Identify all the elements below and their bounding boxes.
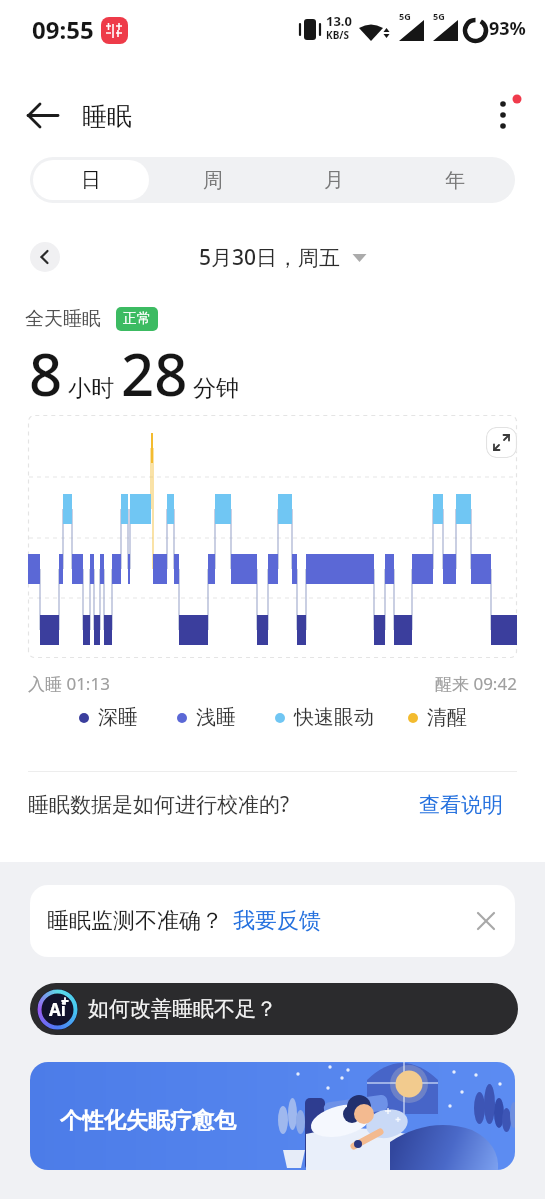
button[interactable]: 个性化失眠疗愈包 bbox=[30, 1062, 515, 1170]
staticText: 如何改善睡眠不足？ bbox=[88, 996, 277, 1022]
staticText: 28 bbox=[121, 334, 188, 413]
button[interactable]: 5月30日，周五 bbox=[199, 243, 367, 272]
button[interactable]: 周 bbox=[155, 160, 270, 200]
staticText: 周 bbox=[203, 168, 223, 193]
staticText: 清醒 bbox=[427, 705, 467, 730]
button[interactable]: 睡眠数据是如何进行校准的? bbox=[28, 790, 503, 819]
staticText: 8 bbox=[29, 334, 63, 413]
staticText: 93% bbox=[489, 16, 526, 41]
button[interactable] bbox=[486, 427, 517, 458]
staticText: 09:55 bbox=[32, 13, 94, 46]
staticText: KB/S bbox=[326, 28, 349, 42]
staticText: 5G bbox=[399, 10, 411, 22]
staticText: 年 bbox=[445, 168, 465, 193]
staticText: 查看说明 bbox=[419, 792, 503, 818]
staticText: 快速眼动 bbox=[294, 705, 374, 730]
staticText: 我要反馈 bbox=[233, 907, 321, 935]
staticText: 醒来 09:42 bbox=[435, 672, 517, 695]
button[interactable] bbox=[475, 910, 497, 932]
staticText: 睡眠监测不准确？ bbox=[47, 907, 223, 935]
button[interactable]: 月 bbox=[276, 160, 391, 200]
staticText: 睡眠 bbox=[82, 101, 132, 132]
button[interactable] bbox=[25, 100, 61, 132]
staticText: 小时 bbox=[68, 374, 114, 403]
staticText: 日 bbox=[81, 168, 101, 193]
staticText: 13.0 bbox=[326, 12, 352, 30]
button[interactable] bbox=[490, 92, 526, 136]
staticText: 全天睡眠 bbox=[25, 307, 101, 331]
staticText: 正常 bbox=[123, 310, 151, 328]
button[interactable]: 年 bbox=[397, 160, 512, 200]
staticText: 入睡 01:13 bbox=[28, 672, 110, 695]
staticText: 月 bbox=[324, 168, 344, 193]
staticText: 深睡 bbox=[98, 705, 138, 730]
staticText: 个性化失眠疗愈包 bbox=[60, 1107, 236, 1135]
button[interactable] bbox=[30, 242, 60, 272]
staticText: 5G bbox=[433, 10, 445, 22]
staticText: 分钟 bbox=[193, 374, 239, 403]
button[interactable]: 睡眠监测不准确？ bbox=[30, 885, 515, 957]
button[interactable]: Ai bbox=[30, 983, 518, 1035]
button[interactable]: 日 bbox=[33, 160, 149, 200]
staticText: 5月30日，周五 bbox=[199, 243, 341, 272]
staticText: 浅睡 bbox=[196, 705, 236, 730]
staticText: 睡眠数据是如何进行校准的? bbox=[28, 790, 290, 819]
staticText: Ai bbox=[49, 998, 66, 1021]
